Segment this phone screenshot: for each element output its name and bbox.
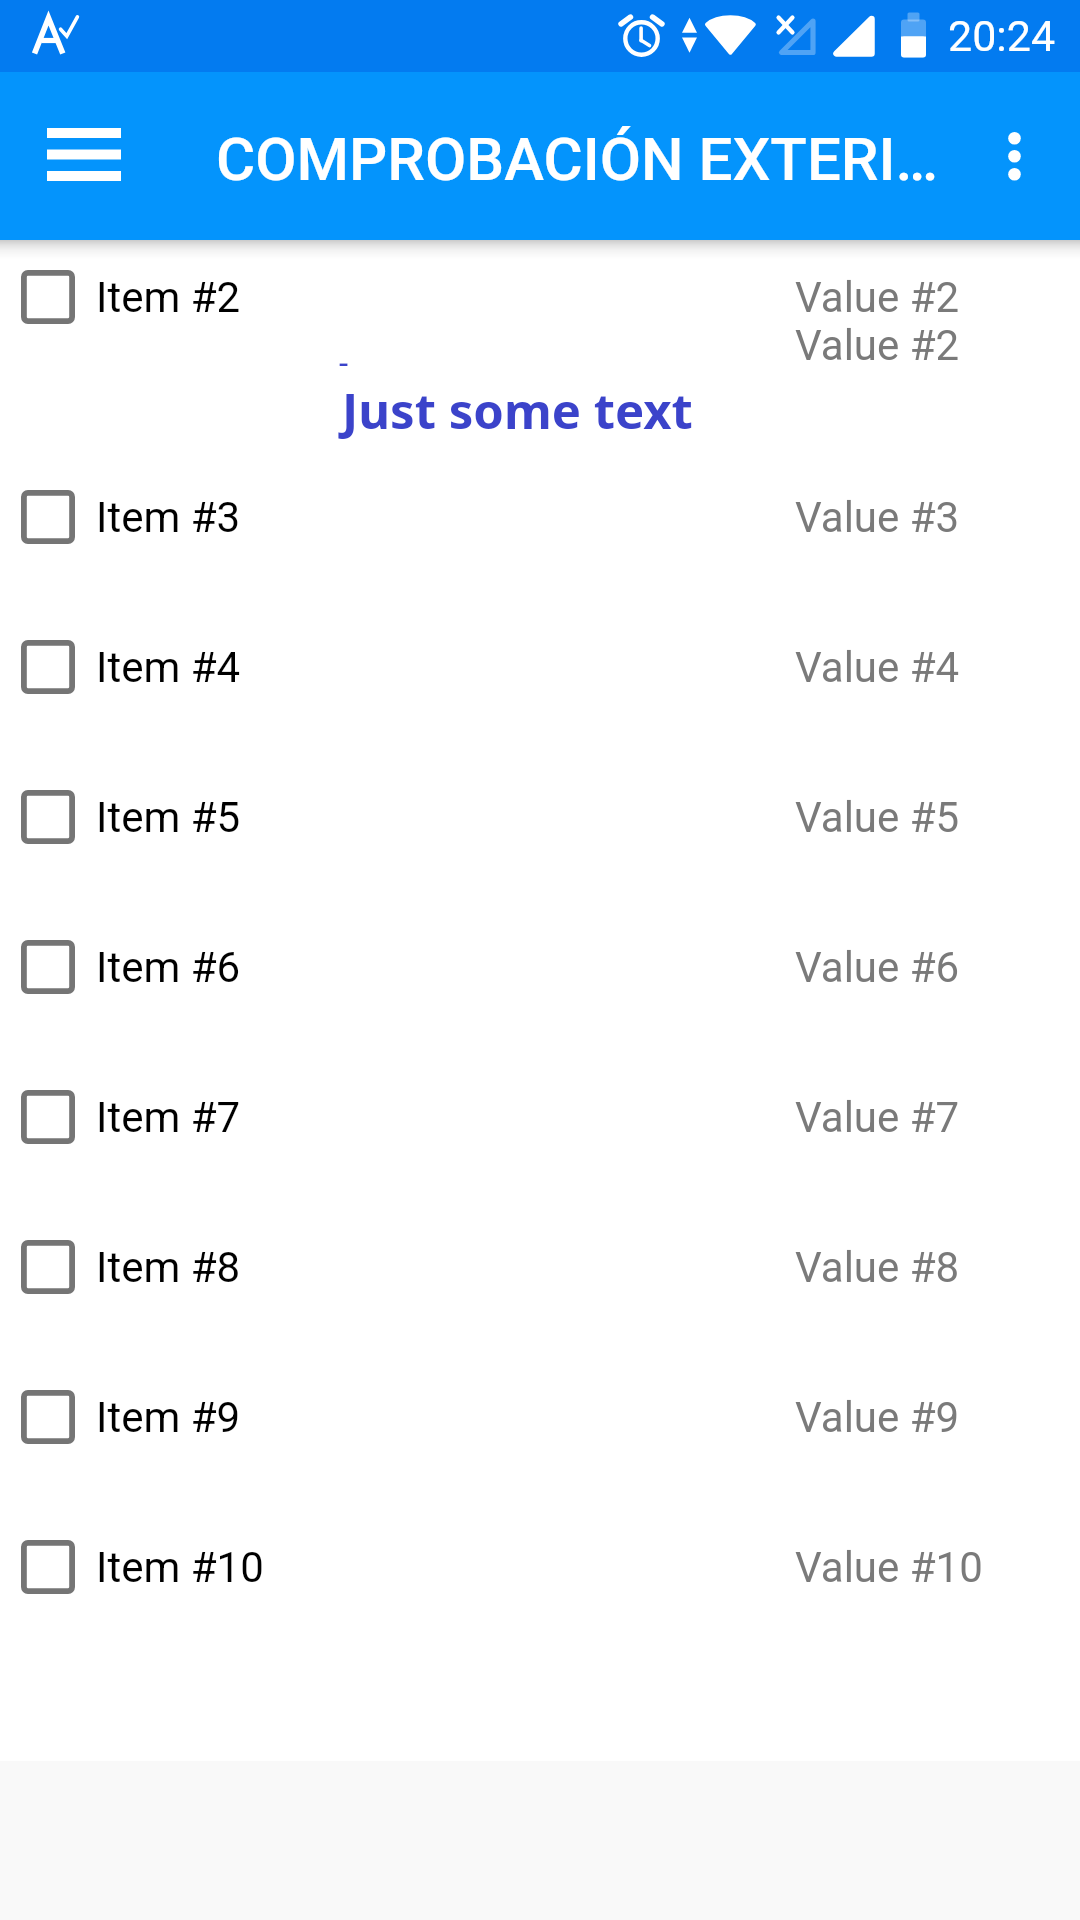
staticText: Item #6 xyxy=(96,943,241,992)
button[interactable]: Item #6 xyxy=(0,892,1080,1042)
button[interactable]: Open navigation drawer xyxy=(0,72,168,240)
staticText: Item #2 xyxy=(96,273,241,322)
button[interactable]: Item #2 xyxy=(0,222,1080,442)
button[interactable]: More options xyxy=(948,72,1080,240)
staticText: Item #5 xyxy=(96,793,241,842)
staticText: Item #8 xyxy=(96,1243,241,1292)
staticText: Value #9 xyxy=(795,1393,960,1442)
staticText: Value #4 xyxy=(795,643,960,692)
staticText: Just some text xyxy=(342,377,693,444)
staticText: Item #7 xyxy=(96,1093,241,1142)
staticText: Item #4 xyxy=(96,643,241,692)
staticText: Value #7 xyxy=(795,1093,960,1142)
staticText: Item #3 xyxy=(96,493,241,542)
staticText: Item #9 xyxy=(96,1393,241,1442)
button[interactable]: Item #4 xyxy=(0,592,1080,742)
button[interactable]: Item #9 xyxy=(0,1342,1080,1492)
staticText: Value #6 xyxy=(795,943,960,992)
button[interactable]: Item #3 xyxy=(0,442,1080,592)
staticText: Value #10 xyxy=(795,1543,983,1592)
staticText: 20:24 xyxy=(948,11,1056,61)
staticText: Value #2 xyxy=(795,321,960,370)
button[interactable]: Item #7 xyxy=(0,1042,1080,1192)
button[interactable]: Item #8 xyxy=(0,1192,1080,1342)
staticText: Value #3 xyxy=(795,493,960,542)
staticText: Item #10 xyxy=(96,1543,264,1592)
staticText: - xyxy=(339,344,349,383)
button[interactable]: Item #5 xyxy=(0,742,1080,892)
button[interactable]: Item #10 xyxy=(0,1492,1080,1642)
staticText: Value #8 xyxy=(795,1243,960,1292)
staticText: Value #5 xyxy=(795,793,960,842)
staticText: Value #2 xyxy=(795,273,960,322)
staticText: COMPROBACIÓN EXTERI… xyxy=(216,124,939,194)
